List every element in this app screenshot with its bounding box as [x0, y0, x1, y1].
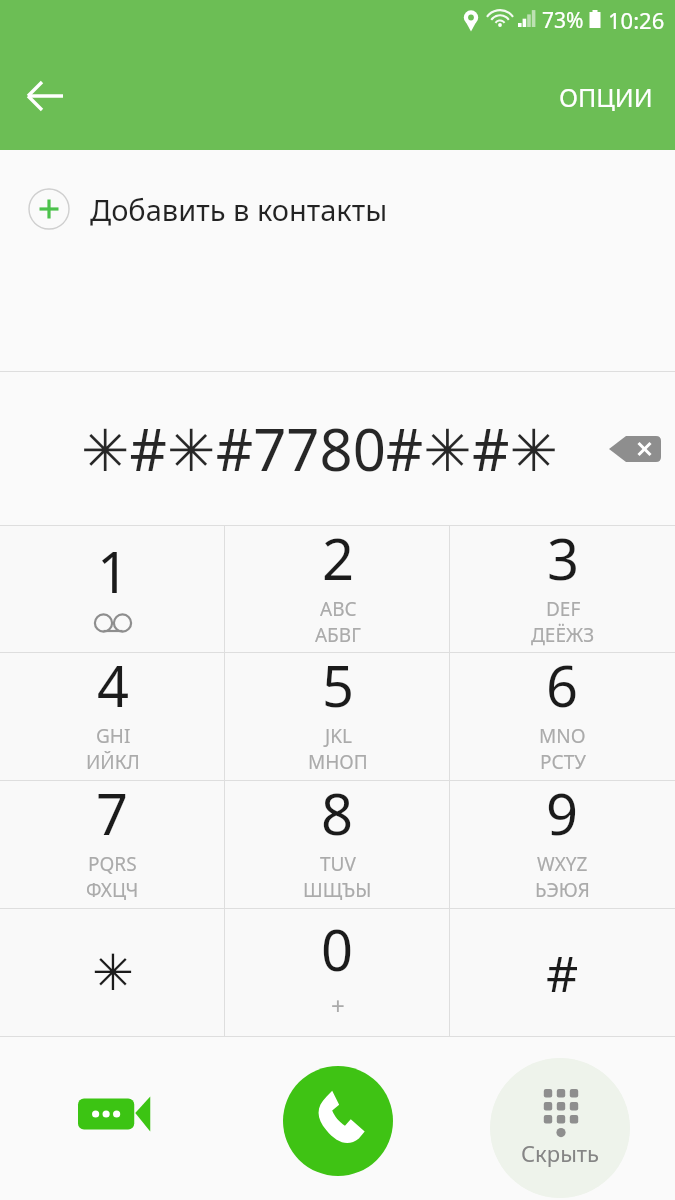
button[interactable]: 7: [0, 781, 225, 908]
button[interactable]: Video call: [68, 1077, 158, 1151]
staticText: ABC: [320, 596, 357, 622]
staticText: АБВГ: [315, 622, 361, 646]
staticText: 9: [546, 775, 579, 851]
button[interactable]: Backspace: [603, 419, 669, 479]
staticText: ✳: [92, 944, 134, 1002]
staticText: PQRS: [88, 851, 137, 877]
staticText: РСТУ: [540, 749, 586, 774]
staticText: DEF: [546, 596, 581, 622]
button[interactable]: 2: [225, 526, 450, 652]
staticText: 3: [547, 520, 580, 596]
staticText: JKL: [325, 723, 352, 749]
button[interactable]: Скрыть: [490, 1058, 630, 1198]
button[interactable]: 5: [225, 653, 450, 780]
staticText: 7: [96, 775, 129, 851]
button[interactable]: 3: [450, 526, 675, 652]
staticText: WXYZ: [537, 851, 588, 877]
staticText: 73%: [542, 6, 584, 35]
button[interactable]: 4: [0, 653, 225, 780]
staticText: МНОП: [308, 749, 368, 774]
staticText: 1: [97, 533, 130, 609]
button[interactable]: 9: [450, 781, 675, 908]
button[interactable]: Call: [283, 1066, 393, 1176]
staticText: ФХЦЧ: [86, 877, 139, 902]
staticText: +: [331, 989, 345, 1022]
staticText: ОПЦИИ: [559, 80, 653, 114]
staticText: 10:26: [608, 5, 665, 35]
staticText: ЬЭЮЯ: [535, 877, 590, 902]
staticText: ДЕЁЖЗ: [531, 622, 595, 646]
staticText: TUV: [320, 851, 356, 877]
staticText: ШЩЪЫ: [303, 877, 372, 902]
staticText: 4: [97, 647, 130, 723]
staticText: ИЙКЛ: [86, 749, 140, 774]
button[interactable]: ОПЦИИ: [537, 70, 675, 124]
staticText: 0: [321, 911, 354, 987]
button[interactable]: ✳: [0, 909, 225, 1036]
button[interactable]: 1: [0, 526, 225, 652]
staticText: 5: [322, 647, 355, 723]
staticText: 6: [546, 647, 579, 723]
staticText: MNO: [539, 723, 586, 749]
staticText: 2: [322, 520, 355, 596]
button[interactable]: Back: [14, 65, 76, 127]
staticText: GHI: [96, 723, 131, 749]
button[interactable]: 8: [225, 781, 450, 908]
button[interactable]: Добавить в контакты: [0, 180, 675, 238]
staticText: Добавить в контакты: [90, 190, 388, 229]
staticText: Скрыть: [521, 1138, 600, 1168]
button[interactable]: #: [450, 909, 675, 1036]
button[interactable]: 6: [450, 653, 675, 780]
staticText: ✳#✳#7780#✳#✳: [81, 409, 558, 488]
button[interactable]: 0: [225, 909, 450, 1036]
staticText: 8: [321, 775, 354, 851]
staticText: #: [546, 939, 579, 1007]
